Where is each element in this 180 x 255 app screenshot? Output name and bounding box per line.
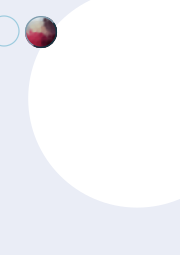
button[interactable]: Contact bbox=[25, 16, 57, 48]
button[interactable]: Add contact bbox=[0, 16, 19, 46]
